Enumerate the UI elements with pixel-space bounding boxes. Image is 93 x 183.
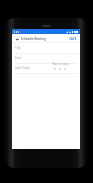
button[interactable]: Back: [14, 36, 20, 42]
staticText: Repeat every: [52, 62, 70, 66]
staticText: Title: [15, 46, 21, 50]
button[interactable]: SAVE: [68, 36, 78, 42]
staticText: Schedule Meeting: [21, 37, 46, 41]
button[interactable]: Title: [15, 46, 21, 50]
button[interactable]: Start Time: [15, 66, 30, 70]
staticText: Start Time: [15, 66, 30, 70]
staticText: SAVE: [69, 37, 77, 41]
staticText: Date: [15, 56, 22, 60]
button[interactable]: Date: [15, 56, 22, 60]
